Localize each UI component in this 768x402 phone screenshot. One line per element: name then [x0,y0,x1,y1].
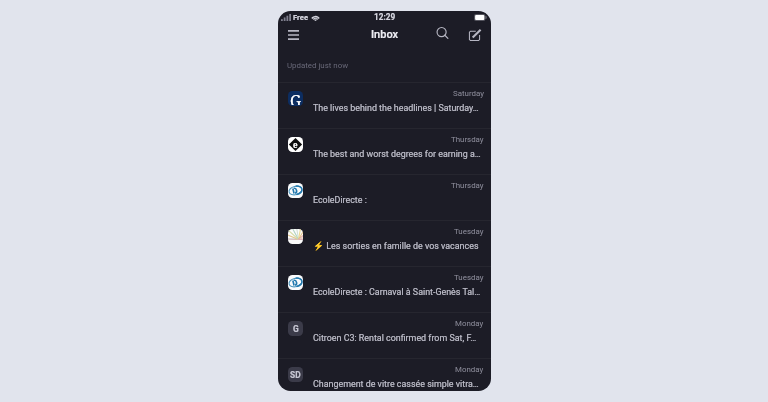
staticText: Tuesday [454,273,484,282]
staticText: Monday [455,319,484,328]
staticText: Tuesday [454,227,484,236]
staticText: EcoleDirecte : Carnaval à Saint-Genès Ta… [313,287,481,297]
button[interactable]: Menu [283,25,303,45]
button[interactable]: G [278,313,491,358]
button[interactable]: Thursday [278,175,491,220]
button[interactable]: G [278,83,491,128]
staticText: e [293,139,298,150]
button[interactable]: Search [433,24,453,44]
staticText: SD [290,370,301,380]
button[interactable]: Tuesday [278,267,491,312]
staticText: Updated just now [287,61,349,70]
staticText: The best and worst degrees for earning a… [313,149,481,159]
staticText: Thursday [451,135,484,144]
staticText: Changement de vitre cassée simple vitra… [313,379,479,389]
staticText: G [293,324,299,334]
button[interactable]: SD [278,359,491,391]
staticText: Inbox [371,28,399,41]
staticText: Thursday [451,181,484,190]
button[interactable]: e [278,129,491,174]
staticText: G [290,91,302,105]
staticText: Free [293,13,308,22]
staticText: Saturday [453,89,484,98]
staticText: Citroen C3: Rental confirmed from Sat, F… [313,333,477,343]
staticText: The lives behind the headlines | Saturda… [313,103,479,113]
staticText: EcoleDirecte : [313,195,367,205]
staticText: ⚡ Les sorties en famille de vos vacances [313,241,479,251]
button[interactable]: Tuesday [278,221,491,266]
button[interactable]: Compose [464,25,484,45]
staticText: Monday [455,365,484,374]
staticText: 12:29 [374,12,396,22]
